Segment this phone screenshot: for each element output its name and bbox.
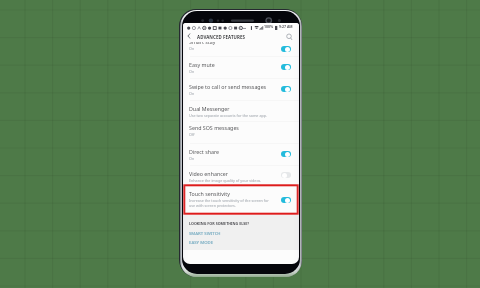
button[interactable]: Video enhancer bbox=[183, 165, 299, 184]
button[interactable]: Switch on bbox=[281, 64, 291, 70]
button[interactable]: Switch off bbox=[281, 172, 291, 178]
button[interactable]: Switch on bbox=[281, 46, 291, 52]
button[interactable]: Switch on bbox=[281, 151, 291, 157]
staticText: On bbox=[189, 91, 195, 96]
staticText: On bbox=[189, 156, 195, 161]
staticText: Use two separate accounts for the same a… bbox=[189, 113, 267, 118]
staticText: Dual Messenger bbox=[189, 105, 230, 112]
button[interactable]: EASY MODE bbox=[189, 239, 214, 245]
button[interactable]: Easy mute bbox=[183, 56, 299, 78]
button[interactable]: Send SOS messages bbox=[183, 121, 299, 142]
staticText: 100% bbox=[264, 24, 274, 29]
button[interactable]: Search bbox=[284, 32, 294, 42]
staticText: Direct share bbox=[189, 148, 219, 155]
staticText: Off bbox=[189, 132, 195, 137]
staticText: Swipe to call or send messages bbox=[189, 83, 267, 90]
staticText: Smart stay bbox=[189, 42, 216, 45]
button[interactable]: Smart stay bbox=[183, 42, 299, 56]
staticText: Enhance the image quality of your videos… bbox=[189, 178, 262, 183]
staticText: Video enhancer bbox=[189, 170, 228, 177]
button[interactable]: Switch on bbox=[281, 197, 291, 203]
staticText: Increase the touch sensitivity of the sc… bbox=[189, 198, 269, 208]
button[interactable]: Back bbox=[184, 31, 194, 41]
staticText: Easy mute bbox=[189, 61, 215, 68]
staticText: On bbox=[189, 69, 195, 74]
staticText: ADVANCED FEATURES bbox=[197, 34, 246, 40]
button[interactable]: Direct share bbox=[183, 143, 299, 164]
button[interactable]: Switch on bbox=[281, 86, 291, 92]
staticText: Touch sensitivity bbox=[189, 190, 230, 197]
staticText: LOOKING FOR SOMETHING ELSE? bbox=[189, 221, 250, 226]
button[interactable]: Dual Messenger bbox=[183, 100, 299, 121]
staticText: 9:27 AM bbox=[279, 24, 293, 29]
staticText: On bbox=[189, 46, 195, 51]
button[interactable]: Swipe to call or send messages bbox=[183, 78, 299, 100]
staticText: Send SOS messages bbox=[189, 124, 239, 131]
button[interactable]: Touch sensitivity bbox=[183, 184, 299, 215]
button[interactable]: SMART SWITCH bbox=[189, 230, 221, 236]
